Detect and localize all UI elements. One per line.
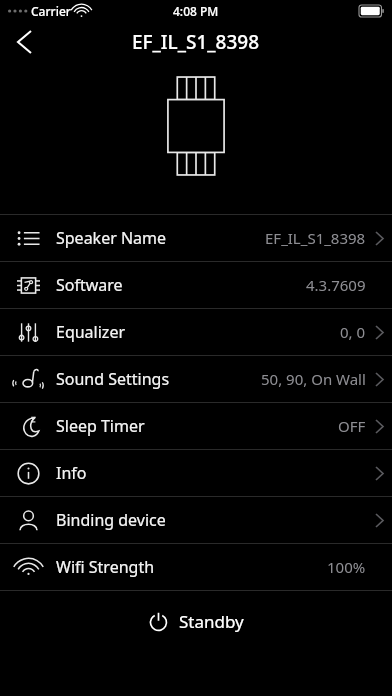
staticText: Binding device bbox=[56, 509, 166, 531]
staticText: 4.3.7609 bbox=[306, 275, 366, 295]
staticText: Wifi Strength bbox=[56, 556, 155, 578]
staticText: Equalizer bbox=[56, 321, 126, 343]
button[interactable]: Binding device bbox=[0, 497, 392, 543]
staticText: 100% bbox=[327, 557, 366, 577]
staticText: Info bbox=[56, 462, 87, 484]
staticText: Software bbox=[56, 274, 123, 296]
staticText: Sleep Timer bbox=[56, 415, 145, 437]
button[interactable]: Info bbox=[0, 450, 392, 496]
button[interactable]: Equalizer bbox=[0, 309, 392, 355]
staticText: Sound Settings bbox=[56, 368, 170, 390]
staticText: 0, 0 bbox=[340, 322, 366, 342]
button[interactable]: Sound Settings bbox=[0, 356, 392, 402]
staticText: Carrier bbox=[31, 3, 71, 19]
button[interactable]: Wifi Strength bbox=[0, 544, 392, 590]
staticText: EF_IL_S1_8398 bbox=[265, 228, 366, 248]
button[interactable]: Sleep Timer bbox=[0, 403, 392, 449]
button[interactable]: Speaker Name bbox=[0, 215, 392, 261]
staticText: Standby bbox=[179, 610, 244, 633]
staticText: EF_IL_S1_8398 bbox=[132, 29, 260, 55]
staticText: Speaker Name bbox=[56, 227, 167, 249]
button[interactable]: Software bbox=[0, 262, 392, 308]
staticText: 4:08 PM bbox=[173, 3, 219, 19]
staticText: OFF bbox=[338, 416, 366, 436]
button[interactable]: Standby bbox=[131, 602, 262, 641]
button[interactable]: Back bbox=[0, 22, 48, 62]
staticText: 50, 90, On Wall bbox=[261, 369, 366, 389]
